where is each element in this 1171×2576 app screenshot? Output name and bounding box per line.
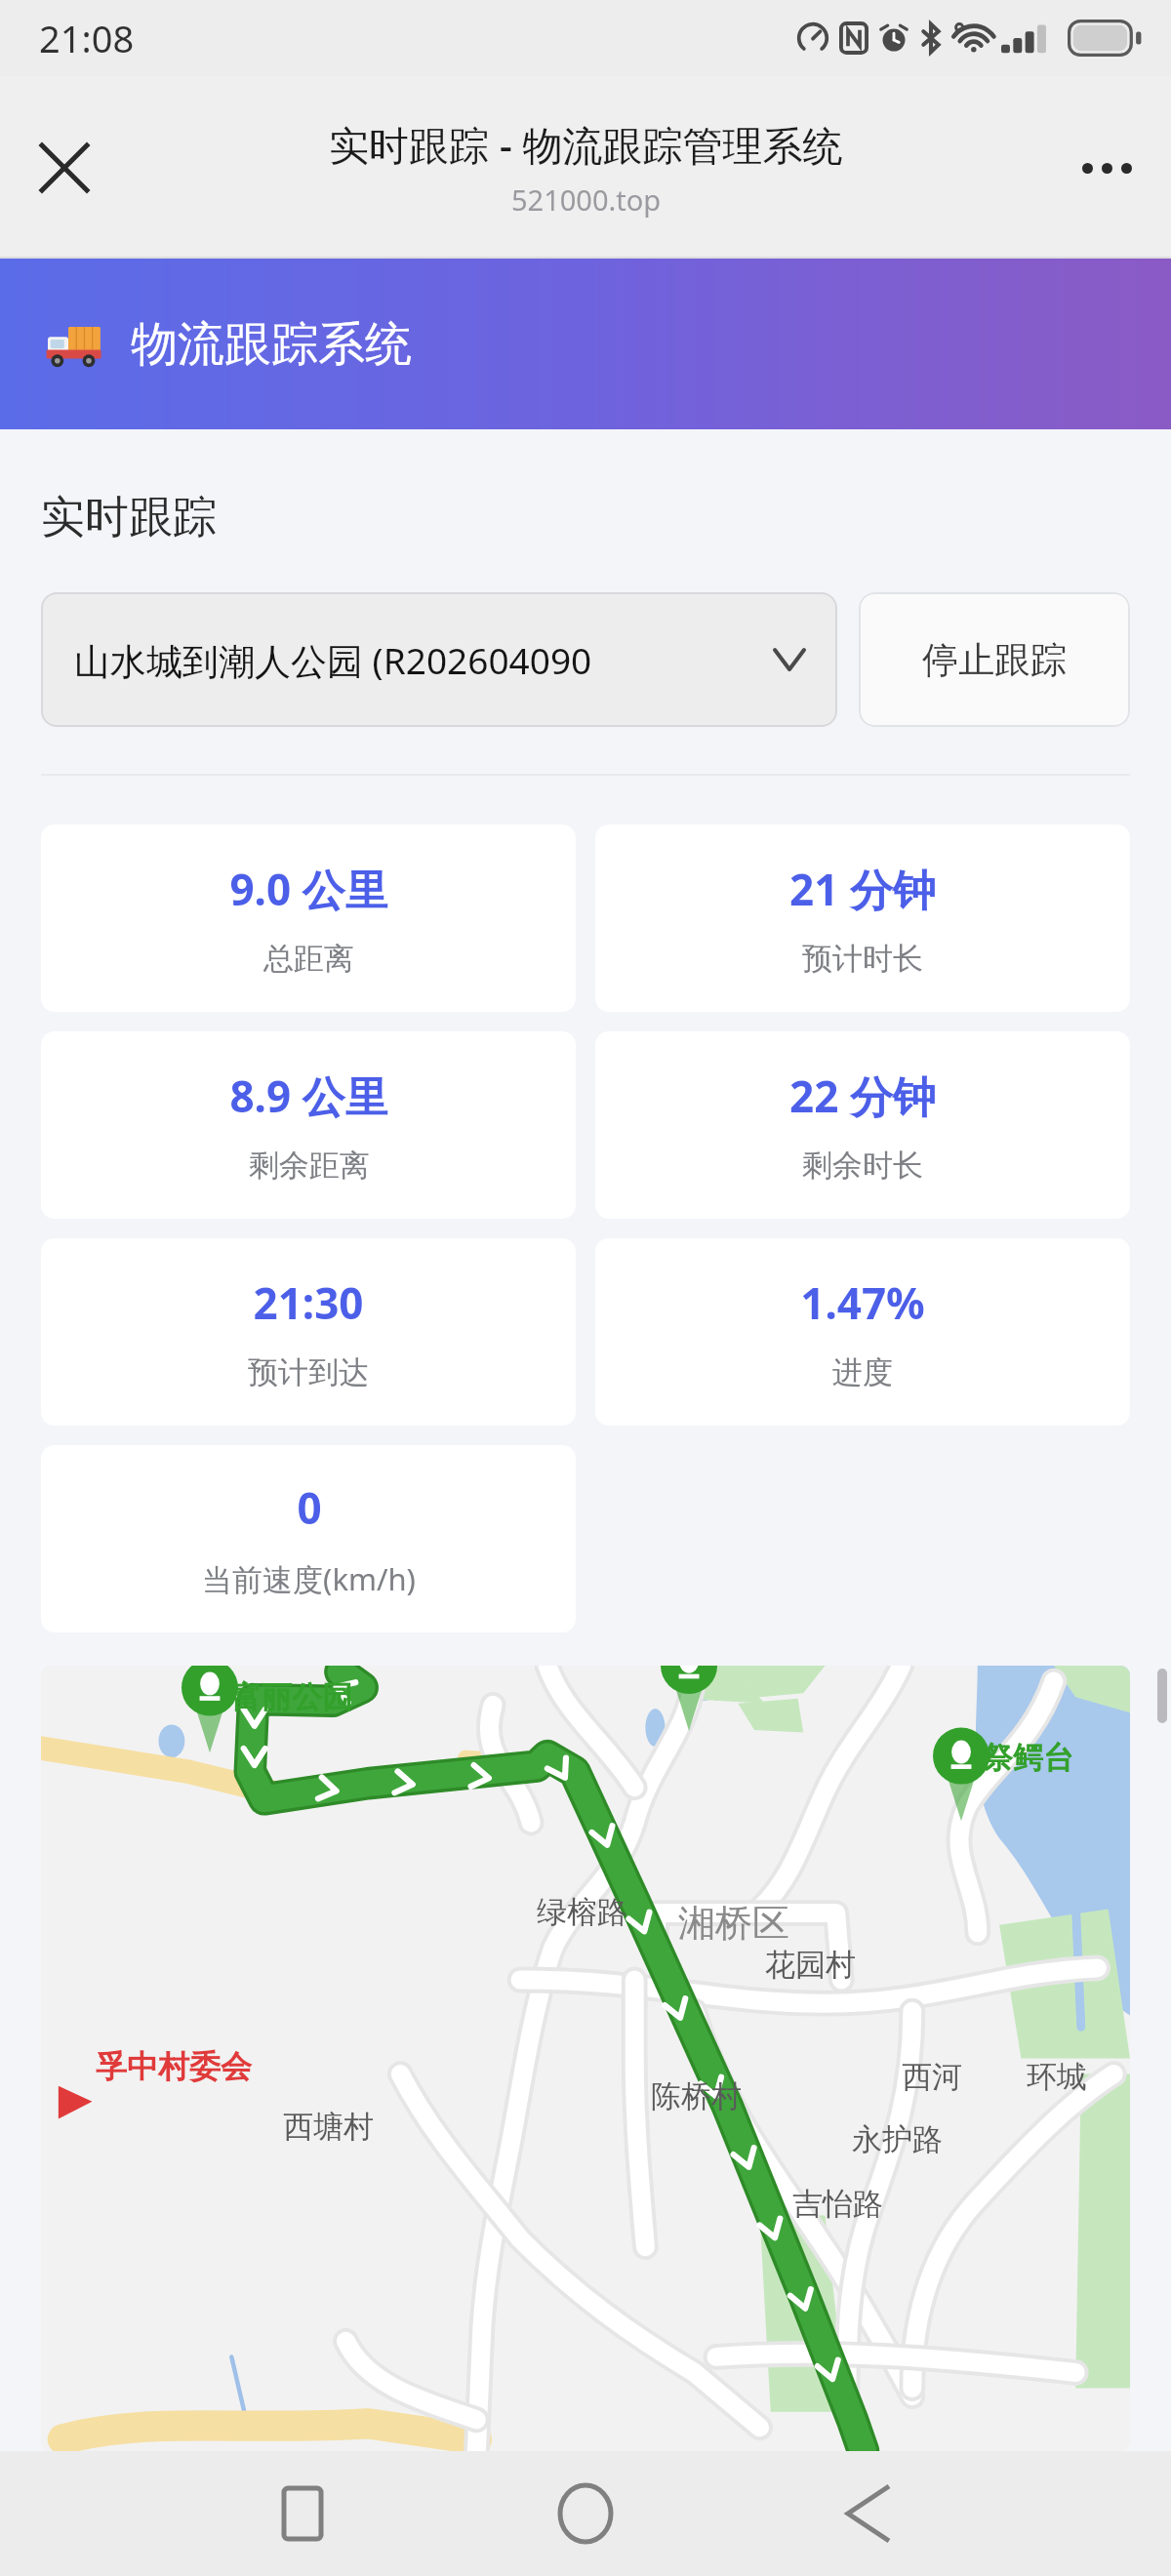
staticText: 物流跟踪系统 <box>131 315 412 374</box>
button[interactable]: 21 分钟 <box>595 825 1130 1012</box>
staticText: 环城 <box>1027 2058 1087 2096</box>
staticText: 剩余距离 <box>249 1147 370 1185</box>
staticText: 孚中村委会 <box>96 2047 252 2086</box>
staticText: 实时跟踪 <box>41 490 217 545</box>
button[interactable]: 1.47% <box>595 1238 1130 1426</box>
button[interactable]: Route map <box>41 1666 1130 2451</box>
staticText: 当前速度(km/h) <box>202 1558 416 1599</box>
staticText: 山水城到潮人公园 (R202604090 <box>74 635 763 685</box>
staticText: 22 分钟 <box>789 1067 936 1125</box>
staticText: 21:30 <box>253 1273 364 1332</box>
staticText: 绿榕路 <box>537 1893 627 1931</box>
button[interactable]: Back <box>781 2451 956 2576</box>
button[interactable]: Home <box>498 2451 673 2576</box>
staticText: 停止跟踪 <box>922 637 1067 683</box>
staticText: 8.9 公里 <box>229 1067 388 1125</box>
button[interactable]: More options <box>1060 121 1153 215</box>
staticText: 21:08 <box>39 13 135 63</box>
staticText: 21 分钟 <box>789 860 936 918</box>
button[interactable]: 9.0 公里 <box>41 825 576 1012</box>
staticText: 0 <box>297 1478 322 1537</box>
staticText: 西河 <box>902 2058 962 2096</box>
staticText: 陈桥村 <box>651 2077 742 2115</box>
staticText: 9.0 公里 <box>229 860 388 918</box>
staticText: 湘桥区 <box>678 1900 789 1947</box>
staticText: 剩余时长 <box>802 1147 923 1185</box>
button[interactable]: Recent apps <box>215 2451 390 2576</box>
staticText: 祭鳄台 <box>983 1739 1073 1777</box>
button[interactable]: Close <box>18 121 111 215</box>
button[interactable]: 0 <box>41 1445 576 1632</box>
staticText: 永护路 <box>852 2120 943 2158</box>
staticText: 实时跟踪 - 物流跟踪管理系统 <box>329 117 843 172</box>
staticText: 吉怡路 <box>792 2185 883 2223</box>
staticText: 总距离 <box>263 940 354 978</box>
staticText: 1.47% <box>800 1273 925 1332</box>
staticText: 富丽公园 <box>231 1678 352 1716</box>
button[interactable]: 停止跟踪 <box>859 592 1130 727</box>
staticText: 花园村 <box>765 1946 856 1984</box>
staticText: 西塘村 <box>283 2108 374 2146</box>
button[interactable]: 8.9 公里 <box>41 1031 576 1219</box>
button[interactable]: 山水城到潮人公园 (R202604090 <box>41 592 837 727</box>
staticText: 预计时长 <box>802 940 923 978</box>
button[interactable]: 22 分钟 <box>595 1031 1130 1219</box>
staticText: 进度 <box>832 1353 893 1391</box>
button[interactable]: 21:30 <box>41 1238 576 1426</box>
staticText: 预计到达 <box>248 1353 369 1391</box>
staticText: 521000.top <box>511 181 662 219</box>
